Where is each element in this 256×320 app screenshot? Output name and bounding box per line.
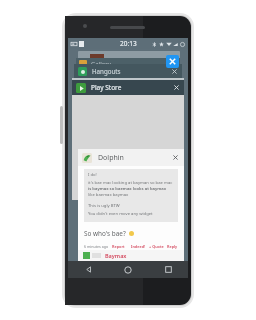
staticText: is baymax so baemax looks at baymax look… [88,186,174,192]
button[interactable]: Dolphin [78,149,184,261]
staticText: Reply [167,244,178,249]
button[interactable]: Home [108,261,148,278]
staticText: I do! [88,172,97,178]
staticText: Baymax [105,252,127,259]
button[interactable]: Gallery [76,58,180,70]
staticText: Hangouts [92,67,121,75]
staticText: Dolphin [98,153,124,163]
button[interactable]: Back [68,261,108,278]
button[interactable]: Indeed! [131,244,146,249]
staticText: Report [112,244,125,249]
staticText: Gallery [91,60,111,68]
button[interactable]: Play Store [72,80,184,200]
staticText: This is ugly BTW [88,203,120,209]
button[interactable]: Close Dolphin [171,153,180,162]
staticText: it's bae mac looking at bayman so bae ma… [88,180,174,186]
staticText: So who's bae? [84,229,126,238]
button[interactable]: Reply [167,244,178,249]
button[interactable]: Recent apps [148,261,188,278]
staticText: 20:13 [120,39,137,48]
button[interactable]: Report [112,244,125,249]
staticText: + Quote [149,244,164,249]
button[interactable]: + Quote [149,244,164,249]
staticText: like baemax baymax [88,192,129,198]
button[interactable]: Hangouts [74,64,182,78]
staticText: Play Store [91,83,122,92]
button[interactable]: Close all [166,55,179,68]
button[interactable] [78,51,180,61]
staticText: You didn't even move any widget [88,211,153,217]
staticText: 6 minutes ago [84,244,109,249]
staticText: Indeed! [131,244,146,249]
